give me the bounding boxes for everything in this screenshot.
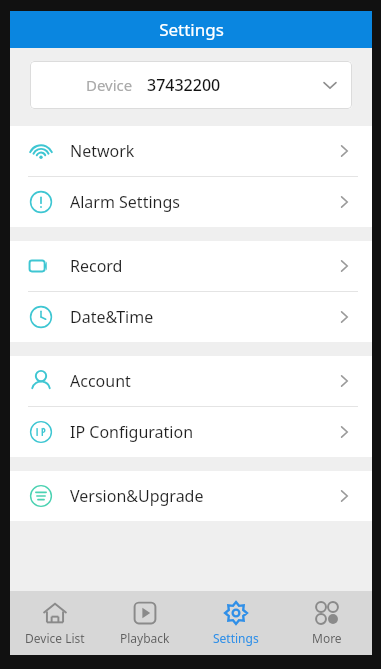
button[interactable]: IP Configuration: [10, 407, 372, 457]
button[interactable]: Date&Time: [10, 292, 372, 342]
staticText: Network: [70, 140, 135, 162]
button[interactable]: More: [281, 600, 372, 646]
staticText: Date&Time: [70, 306, 154, 328]
staticText: Playback: [120, 630, 170, 646]
button[interactable]: Alarm Settings: [10, 177, 372, 227]
staticText: Version&Upgrade: [70, 485, 204, 507]
button[interactable]: Playback: [100, 600, 190, 646]
button[interactable]: Account: [10, 356, 372, 406]
staticText: Settings: [213, 630, 259, 646]
staticText: Record: [70, 255, 123, 277]
staticText: Device: [86, 75, 133, 95]
staticText: More: [312, 630, 342, 646]
staticText: Settings: [159, 18, 224, 41]
staticText: Alarm Settings: [70, 191, 180, 213]
button[interactable]: Network: [10, 126, 372, 176]
staticText: Device List: [25, 630, 85, 646]
button[interactable]: Device: [30, 61, 352, 109]
staticText: 37432200: [147, 74, 221, 96]
button[interactable]: Record: [10, 241, 372, 291]
staticText: IP Configuration: [70, 421, 194, 443]
staticText: Account: [70, 370, 131, 392]
button[interactable]: Version&Upgrade: [10, 471, 372, 521]
button[interactable]: Device List: [10, 600, 100, 646]
button[interactable]: Settings: [190, 600, 281, 646]
